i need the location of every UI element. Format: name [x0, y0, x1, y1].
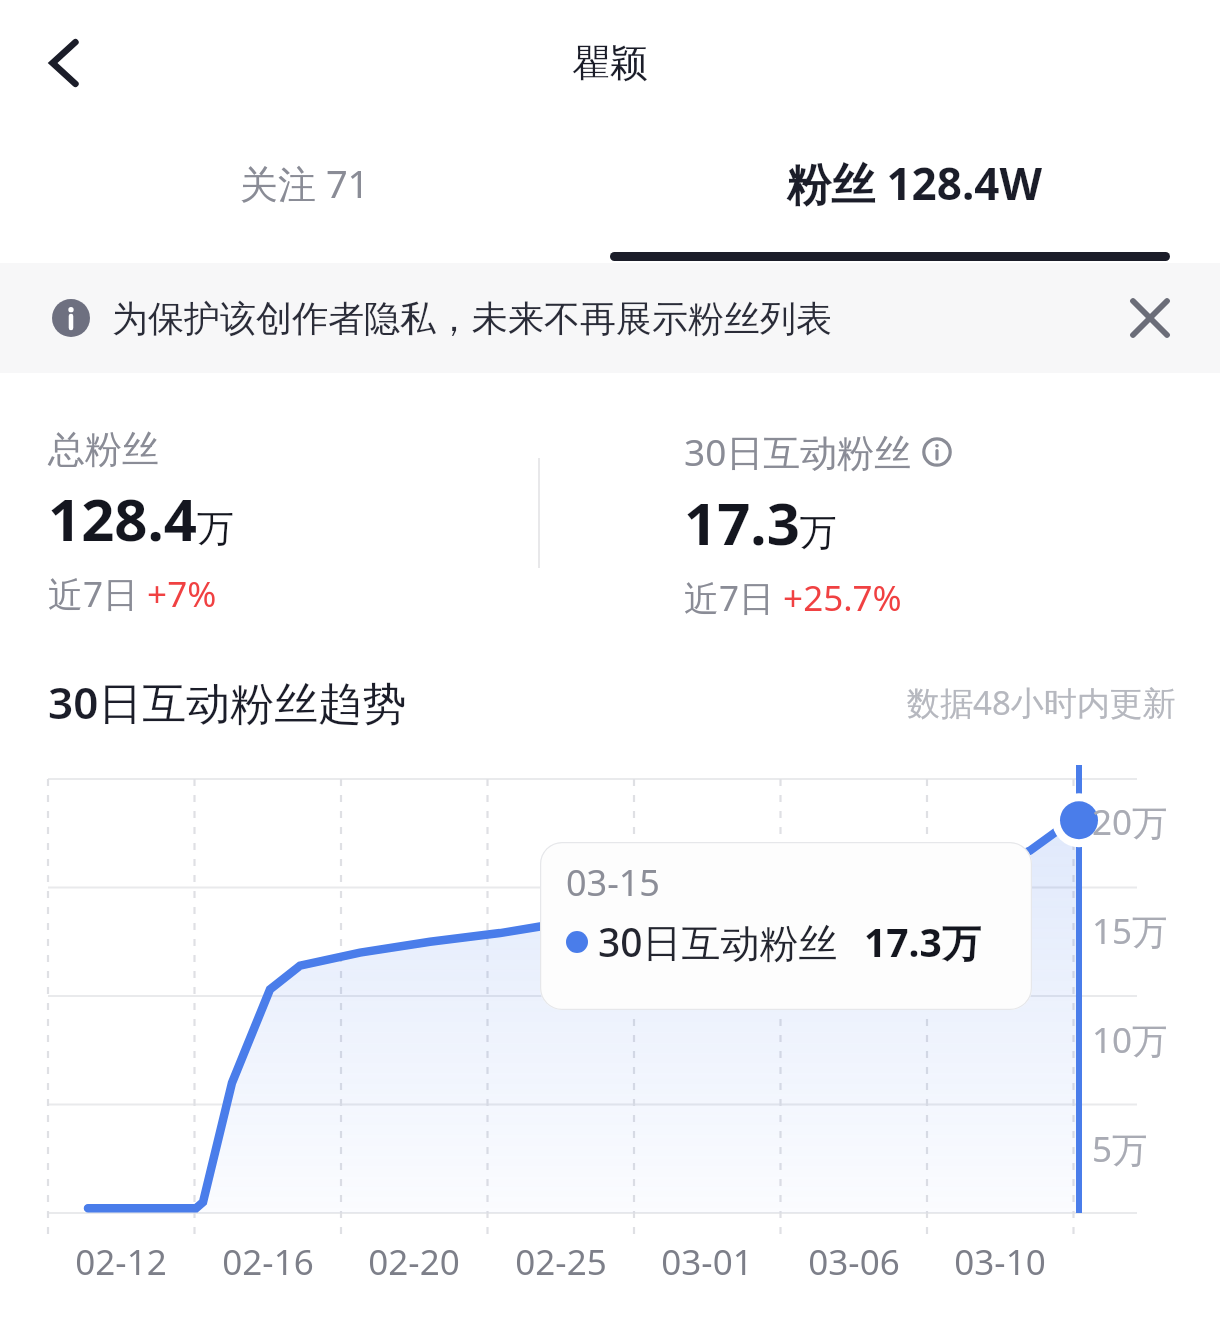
staticText: 关注 71	[240, 157, 370, 209]
staticText: 02-20	[362, 1238, 466, 1286]
button[interactable]: Back	[18, 17, 110, 109]
staticText: 02-12	[69, 1238, 173, 1286]
staticText: 粉丝 128.4W	[787, 153, 1043, 213]
staticText: 03-15	[566, 858, 660, 907]
staticText: 02-25	[509, 1238, 613, 1286]
staticText: 03-06	[802, 1238, 906, 1286]
staticText: 数据48小时内更新	[907, 680, 1176, 725]
button[interactable]: 30日互动粉丝	[610, 408, 1220, 638]
staticText: 03-01	[655, 1238, 759, 1286]
staticText: 近7日 +7%	[48, 570, 217, 618]
staticText: 15万	[1092, 907, 1168, 955]
staticText: 128.4万	[48, 479, 235, 558]
staticText: 为保护该创作者隐私，未来不再展示粉丝列表	[112, 296, 832, 341]
staticText: 总粉丝	[48, 426, 159, 473]
staticText: 17.3万	[684, 483, 837, 562]
staticText: 20万	[1092, 798, 1168, 846]
staticText: 03-10	[948, 1238, 1052, 1286]
staticText: 近7日 +25.7%	[684, 574, 902, 622]
button[interactable]: 总粉丝	[0, 408, 610, 638]
staticText: 30日互动粉丝趋势	[48, 672, 407, 732]
staticText: 10万	[1092, 1016, 1168, 1064]
staticText: 30日互动粉丝	[598, 915, 838, 968]
staticText: 02-16	[216, 1238, 320, 1286]
button[interactable]: 03-15	[540, 842, 1032, 1010]
staticText: 5万	[1092, 1125, 1148, 1173]
staticText: 30日互动粉丝	[684, 426, 912, 477]
button[interactable]: 关注 71	[0, 126, 610, 263]
staticText: 瞿颖	[572, 39, 648, 87]
staticText: 17.3万	[864, 915, 981, 968]
button[interactable]: 粉丝 128.4W	[610, 126, 1220, 263]
button[interactable]: Close	[1116, 284, 1184, 352]
